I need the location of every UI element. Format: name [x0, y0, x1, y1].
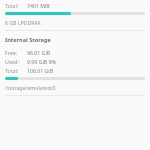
staticText: Free:	[5, 49, 17, 56]
button[interactable]: Used:	[5, 57, 145, 66]
staticText: /storage/emulated/0	[5, 84, 56, 91]
staticText: 106.01 GiB	[27, 67, 54, 74]
staticText: Used:	[5, 58, 19, 65]
staticText: Internal Storage	[5, 36, 51, 44]
button[interactable]: Total:	[5, 66, 145, 75]
staticText: 96.01 GiB	[27, 49, 51, 56]
other: Usage progress	[5, 12, 145, 15]
other: Usage progress	[5, 77, 145, 80]
staticText: Total:	[5, 67, 19, 74]
button[interactable]: Total:	[5, 1, 145, 10]
button[interactable]: /storage/emulated/0	[5, 84, 145, 91]
staticText: 6 GB LPDDR4X	[5, 19, 41, 26]
staticText: Total:	[5, 2, 19, 9]
button[interactable]: Free:	[5, 48, 145, 57]
staticText: 9.99 GiB 9%	[27, 58, 56, 65]
button[interactable]: 6 GB LPDDR4X	[5, 19, 145, 26]
staticText: 7401 MiB	[27, 2, 50, 9]
